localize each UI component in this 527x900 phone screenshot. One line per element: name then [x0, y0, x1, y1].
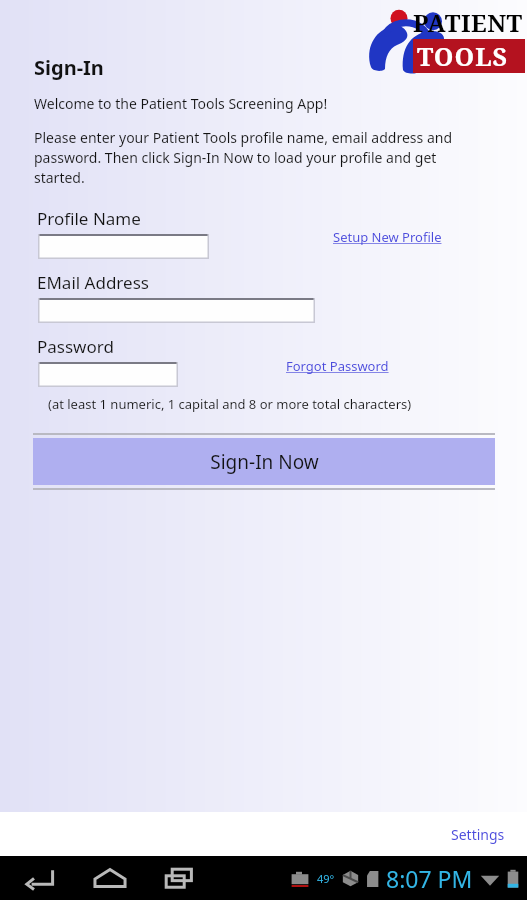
- staticText: Please enter your Patient Tools profile …: [34, 128, 489, 187]
- staticText: (at least 1 numeric, 1 capital and 8 or …: [48, 395, 412, 413]
- staticText: Setup New Profile: [333, 228, 442, 246]
- staticText: Welcome to the Patient Tools Screening A…: [34, 94, 328, 113]
- staticText: Profile Name: [37, 207, 141, 230]
- button[interactable]: Back: [14, 858, 66, 898]
- staticText: Password: [37, 335, 114, 358]
- staticText: EMail Address: [37, 271, 149, 294]
- button[interactable]: [38, 234, 209, 259]
- staticText: 49°: [317, 871, 335, 886]
- button[interactable]: Home: [84, 858, 136, 898]
- button[interactable]: Setup New Profile: [331, 226, 444, 248]
- staticText: 8:07 PM: [386, 863, 473, 894]
- staticText: Sign-In Now: [210, 449, 319, 475]
- staticText: PATIENT: [413, 6, 523, 39]
- staticText: Settings: [451, 825, 505, 844]
- button[interactable]: Forgot Password: [284, 355, 391, 377]
- button[interactable]: Sign-In Now: [33, 433, 495, 490]
- staticText: TOOLS: [417, 39, 509, 73]
- staticText: Sign-In: [34, 54, 104, 81]
- button[interactable]: Recent apps: [154, 858, 206, 898]
- button[interactable]: Settings: [447, 821, 509, 848]
- button[interactable]: [38, 298, 315, 323]
- staticText: Forgot Password: [286, 357, 389, 375]
- button[interactable]: [38, 362, 178, 387]
